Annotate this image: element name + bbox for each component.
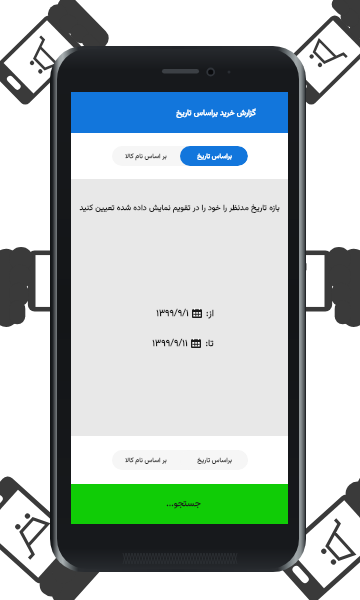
button[interactable]: ۱۳۹۹/۹/۱ xyxy=(71,306,214,320)
staticText: براساس تاریخ xyxy=(197,455,232,465)
staticText: گزارش خرید براساس تاریخ xyxy=(176,107,256,119)
staticText: تا: xyxy=(205,336,214,350)
other: Pick date xyxy=(192,308,202,318)
staticText: بر اساس نام کالا xyxy=(125,455,167,465)
staticText: براساس تاریخ xyxy=(197,151,232,161)
button[interactable]: جستجو... xyxy=(71,484,288,524)
staticText: از: xyxy=(206,306,214,320)
other: Pick date xyxy=(191,338,201,348)
staticText: ۱۳۹۹/۹/۱۱ xyxy=(152,336,188,350)
button[interactable]: براساس تاریخ xyxy=(180,450,248,470)
button[interactable]: براساس تاریخ xyxy=(180,146,248,166)
staticText: ۱۳۹۹/۹/۱ xyxy=(156,306,189,320)
button[interactable]: ۱۳۹۹/۹/۱۱ xyxy=(71,336,214,350)
staticText: جستجو... xyxy=(166,497,201,511)
button[interactable]: بر اساس نام کالا xyxy=(112,450,180,470)
button[interactable]: بر اساس نام کالا xyxy=(112,146,180,166)
staticText: بر اساس نام کالا xyxy=(125,151,167,161)
staticText: بازه تاریخ مدنظر را خود را در تقویم نمای… xyxy=(71,202,288,215)
